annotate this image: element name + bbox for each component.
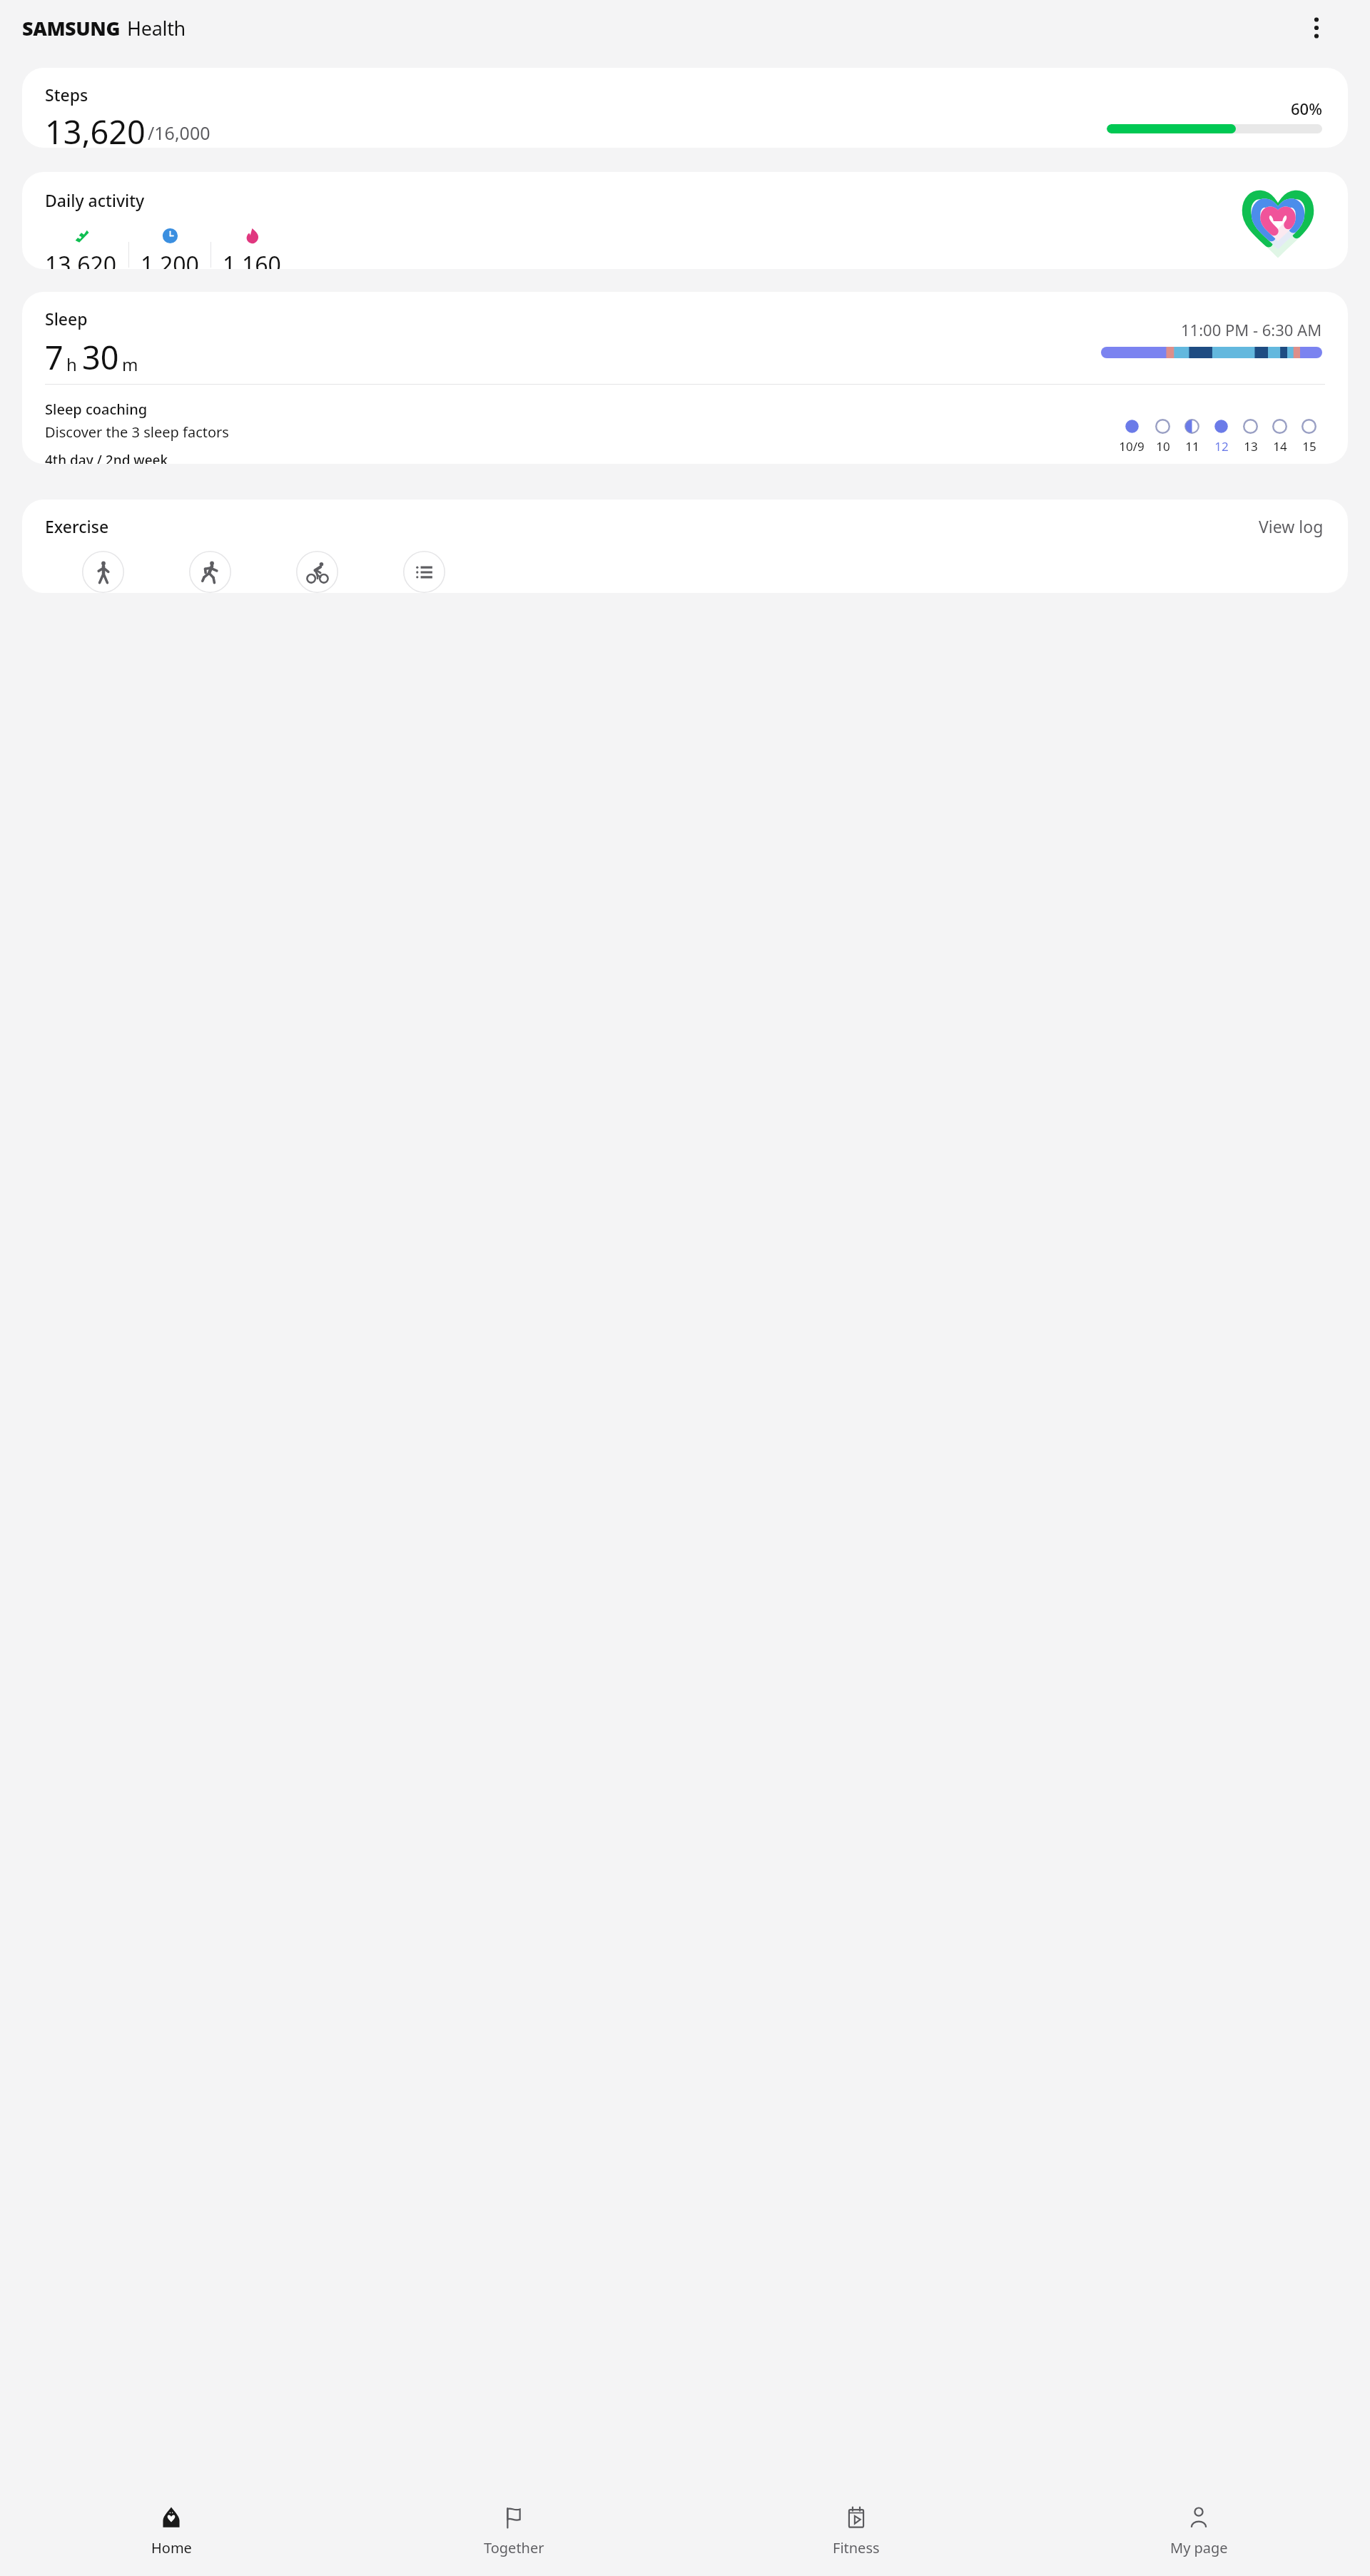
button[interactable]: My page	[1027, 2492, 1370, 2576]
button[interactable]: Daily activity	[22, 172, 1348, 269]
button[interactable]: Together	[342, 2492, 685, 2576]
staticText: Daily activity	[45, 189, 145, 211]
button[interactable]: More exercises	[402, 551, 447, 593]
button[interactable]: Sleep	[22, 292, 1348, 464]
button[interactable]: Running	[188, 551, 233, 593]
staticText: /16,000	[148, 121, 210, 145]
button[interactable]: View log	[1259, 515, 1324, 537]
staticText: My page	[1170, 2538, 1228, 2557]
staticText: 12	[1214, 438, 1229, 455]
staticText: 14	[1273, 438, 1287, 455]
staticText: Sleep coaching	[45, 400, 148, 419]
staticText: h	[66, 353, 77, 376]
staticText: 7	[45, 335, 64, 379]
button[interactable]: Cycling	[295, 551, 340, 593]
staticText: 13,620	[45, 249, 117, 269]
staticText: 11:00 PM - 6:30 AM	[1181, 319, 1322, 340]
staticText: 30	[82, 335, 119, 379]
staticText: m	[122, 353, 138, 376]
staticText: View log	[1259, 515, 1324, 537]
staticText: 10	[1156, 438, 1170, 455]
button[interactable]: Walking	[81, 551, 126, 593]
staticText: 13,620	[45, 110, 146, 148]
staticText: 60%	[1291, 98, 1322, 119]
staticText: 1,200	[141, 249, 199, 269]
staticText: 11	[1185, 438, 1199, 455]
button[interactable]: More options	[1304, 16, 1329, 40]
staticText: 10/9	[1119, 438, 1145, 455]
button[interactable]: Home	[0, 2492, 342, 2576]
staticText: 15	[1302, 438, 1316, 455]
staticText: Discover the 3 sleep factors	[45, 422, 229, 442]
staticText: Steps	[45, 83, 88, 106]
button[interactable]: Steps	[22, 68, 1348, 148]
button[interactable]: Fitness	[685, 2492, 1027, 2576]
staticText: Health	[127, 15, 186, 41]
staticText: 13	[1244, 438, 1258, 455]
staticText: Sleep	[45, 308, 88, 330]
staticText: 1,160	[223, 249, 281, 269]
staticText: Exercise	[45, 515, 109, 537]
staticText: Fitness	[833, 2538, 880, 2557]
button[interactable]: Exercise	[22, 500, 1348, 593]
staticText: Together	[484, 2538, 544, 2557]
staticText: SAMSUNG	[22, 15, 121, 41]
staticText: Home	[151, 2538, 192, 2557]
staticText: 4th day / 2nd week	[45, 451, 168, 464]
